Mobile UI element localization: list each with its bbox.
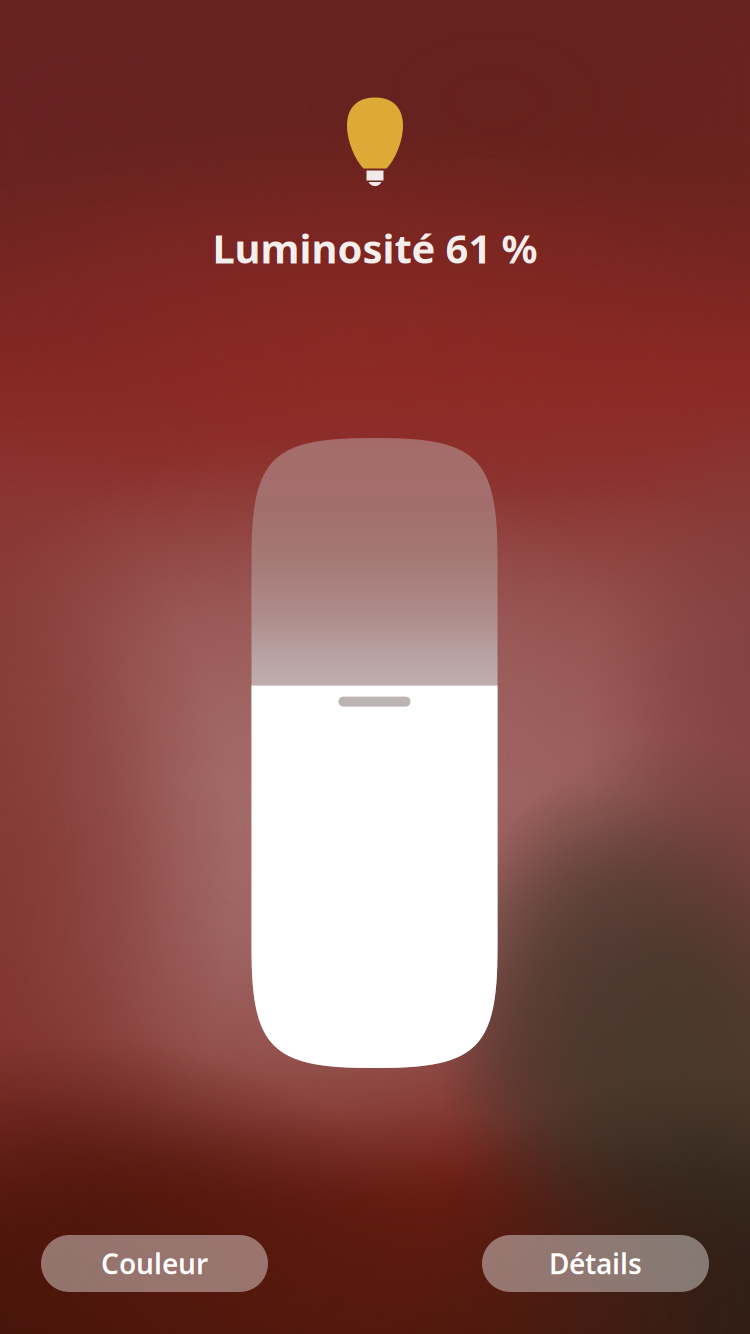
button[interactable]: Détails — [482, 1235, 709, 1292]
staticText: Luminosité 61 % — [212, 221, 537, 275]
button[interactable]: Couleur — [41, 1235, 268, 1292]
staticText: Couleur — [101, 1245, 208, 1282]
button[interactable]: 61 % — [251, 438, 497, 1068]
staticText: Détails — [549, 1245, 642, 1282]
